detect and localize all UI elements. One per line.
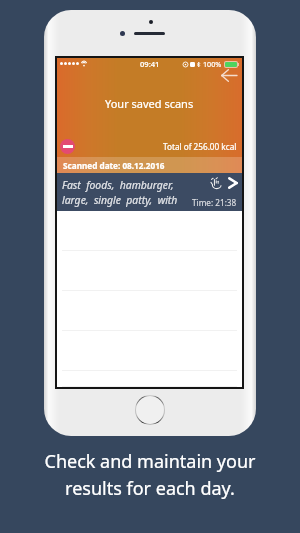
staticText: Fast foods, hamburger, — [62, 178, 174, 192]
button[interactable]: Home — [135, 395, 165, 425]
staticText: Your saved scans — [105, 96, 194, 111]
staticText: large, single patty, with — [62, 193, 178, 207]
other: Tap — [210, 177, 222, 189]
staticText: Scanned date: 08.12.2016 — [63, 160, 165, 171]
button[interactable]: Delete scan — [60, 139, 75, 154]
staticText: Check and maintain your results for each… — [0, 449, 300, 500]
staticText: Total of 256.00 kcal — [163, 141, 237, 152]
button[interactable] — [57, 371, 242, 387]
staticText: 100% — [203, 59, 222, 69]
staticText: Time: 21:38 — [192, 197, 237, 208]
button[interactable]: Fast foods, hamburger, — [57, 173, 242, 211]
button[interactable]: Back — [217, 65, 241, 85]
staticText: 09:41 — [140, 59, 160, 69]
